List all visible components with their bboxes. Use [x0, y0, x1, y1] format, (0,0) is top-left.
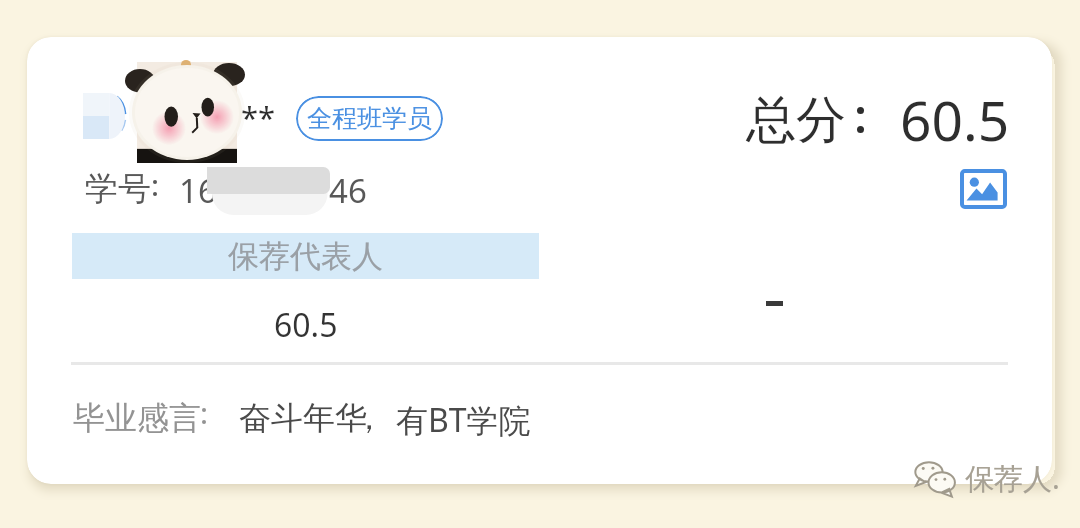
staticText: 有BT学院 [396, 398, 531, 442]
staticText: 保荐代表人 [228, 237, 383, 276]
staticText: ** [241, 96, 276, 138]
staticText: 总分 [746, 89, 846, 152]
staticText: 60.5 [900, 82, 1010, 157]
button[interactable]: 全程班学员 [296, 96, 443, 141]
button[interactable]: 总分 [27, 37, 1052, 484]
staticText: 16 [179, 168, 217, 213]
staticText: 学号 [85, 168, 151, 210]
button[interactable]: Avatar [137, 62, 237, 163]
staticText: 毕业感言 [73, 398, 201, 438]
staticText: 60.5 [274, 303, 338, 347]
staticText: 保荐人. [965, 458, 1060, 498]
staticText: 46 [329, 168, 367, 213]
button[interactable]: Image [960, 169, 1007, 209]
staticText: ， [353, 398, 385, 438]
staticText: 全程班学员 [307, 103, 432, 134]
staticText: 奋斗年华 [239, 398, 367, 438]
